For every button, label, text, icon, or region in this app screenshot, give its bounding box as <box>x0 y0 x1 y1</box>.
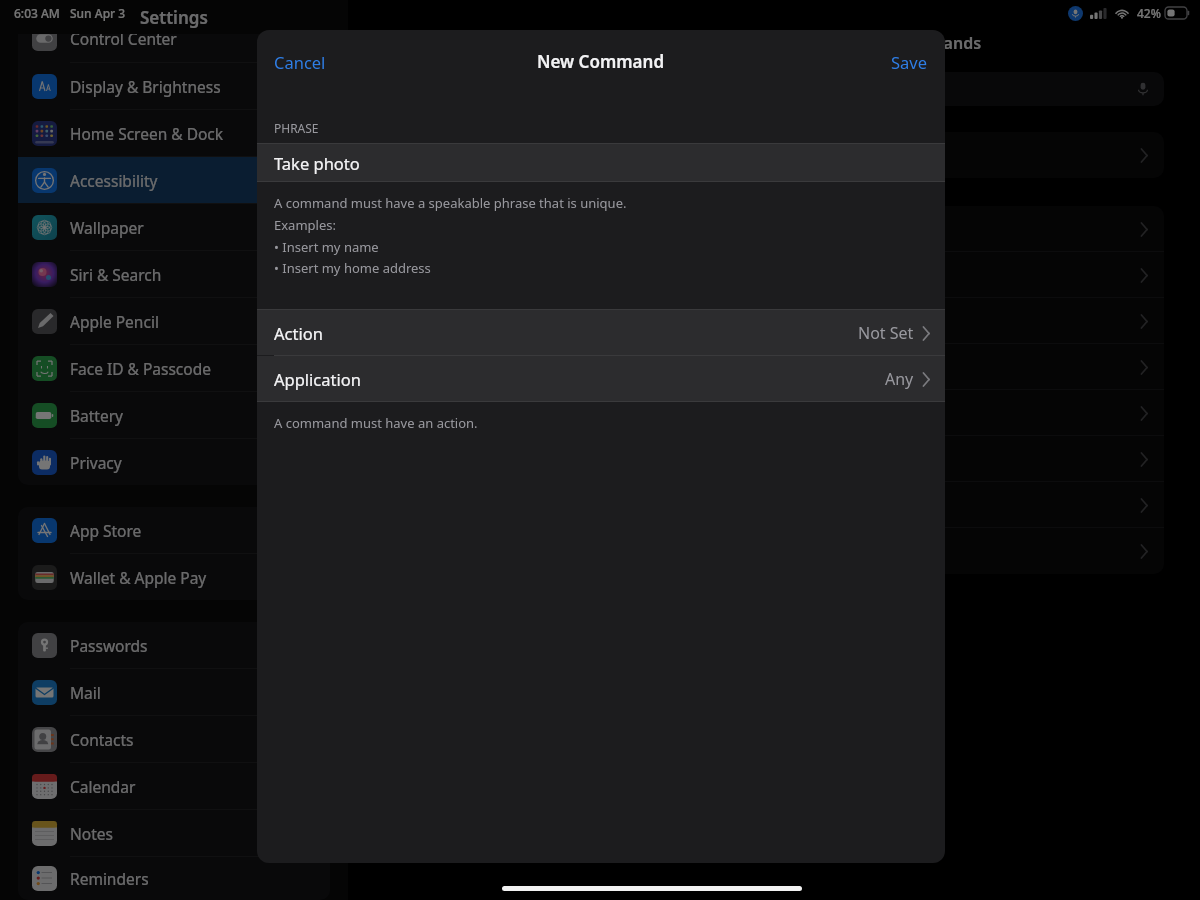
staticText: Apple Pencil <box>70 311 159 332</box>
button[interactable]: Contacts <box>18 716 330 762</box>
button[interactable]: Application <box>257 356 945 401</box>
button[interactable] <box>384 390 1164 436</box>
staticText: Any <box>885 368 914 390</box>
button[interactable]: App Store <box>18 507 330 553</box>
staticText: Not Set <box>858 322 914 344</box>
button[interactable]: Cancel <box>261 45 339 79</box>
staticText: 42% <box>1137 5 1161 21</box>
button[interactable]: Accessibility <box>18 157 330 203</box>
staticText: Customize Commands <box>807 32 982 54</box>
button[interactable]: Wallet & Apple Pay <box>18 554 330 600</box>
staticText: Action <box>274 322 323 344</box>
button[interactable] <box>384 482 1164 528</box>
button[interactable] <box>384 436 1164 482</box>
staticText: Siri & Search <box>70 264 162 285</box>
staticText: PHRASE <box>274 120 319 136</box>
staticText: Settings <box>140 6 208 29</box>
staticText: Wallpaper <box>70 217 144 238</box>
button[interactable] <box>384 206 1164 252</box>
staticText: Wallet & Apple Pay <box>70 567 207 588</box>
staticText: Cancel <box>274 51 326 73</box>
staticText: 6:03 AM <box>14 5 60 21</box>
staticText: New Command <box>537 50 665 73</box>
staticText: A command must have a speakable phrase t… <box>274 194 627 212</box>
button[interactable]: Battery <box>18 392 330 438</box>
staticText: Passwords <box>70 635 148 656</box>
staticText: Take photo <box>274 152 360 174</box>
staticText: Application <box>274 368 361 390</box>
button[interactable] <box>384 132 1164 178</box>
staticText: A command must have an action. <box>274 414 478 432</box>
button[interactable]: Privacy <box>18 439 330 485</box>
button[interactable]: Take photo <box>257 144 945 181</box>
other: Dictate <box>1136 82 1150 96</box>
staticText: Mail <box>70 682 101 703</box>
staticText: Control Center <box>70 34 177 49</box>
button[interactable]: Home Screen & Dock <box>18 110 330 156</box>
button[interactable] <box>384 528 1164 574</box>
button[interactable]: Passwords <box>18 622 330 668</box>
button[interactable]: Action <box>257 310 945 355</box>
button[interactable]: Control Center <box>18 34 330 62</box>
button[interactable]: Calendar <box>18 763 330 809</box>
staticText: Sun Apr 3 <box>70 5 126 21</box>
button[interactable] <box>384 298 1164 344</box>
button[interactable]: Reminders <box>18 857 330 900</box>
staticText: • Insert my home address <box>274 259 431 277</box>
button[interactable]: Siri & Search <box>18 251 330 297</box>
button[interactable]: Save <box>878 45 941 79</box>
staticText: Privacy <box>70 452 122 473</box>
staticText: Accessibility <box>70 170 158 191</box>
button[interactable]: Face ID & Passcode <box>18 345 330 391</box>
staticText: Reminders <box>70 868 149 889</box>
staticText: Save <box>891 51 928 73</box>
button[interactable]: Wallpaper <box>18 204 330 250</box>
staticText: Contacts <box>70 729 134 750</box>
staticText: Battery <box>70 405 124 426</box>
button[interactable] <box>384 252 1164 298</box>
button[interactable]: Mail <box>18 669 330 715</box>
button[interactable]: Dictate <box>384 72 1164 106</box>
staticText: Display & Brightness <box>70 76 221 97</box>
staticText: Home Screen & Dock <box>70 123 224 144</box>
staticText: Examples: <box>274 216 336 234</box>
staticText: Face ID & Passcode <box>70 358 211 379</box>
staticText: Calendar <box>70 776 136 797</box>
button[interactable]: Apple Pencil <box>18 298 330 344</box>
button[interactable] <box>384 344 1164 390</box>
button[interactable]: Notes <box>18 810 330 856</box>
staticText: Notes <box>70 823 113 844</box>
button[interactable]: Display & Brightness <box>18 63 330 109</box>
staticText: App Store <box>70 520 142 541</box>
staticText: • Insert my name <box>274 238 379 256</box>
